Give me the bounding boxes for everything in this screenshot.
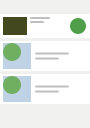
button[interactable] xyxy=(0,14,90,38)
button[interactable] xyxy=(0,74,90,104)
button[interactable] xyxy=(0,41,90,71)
